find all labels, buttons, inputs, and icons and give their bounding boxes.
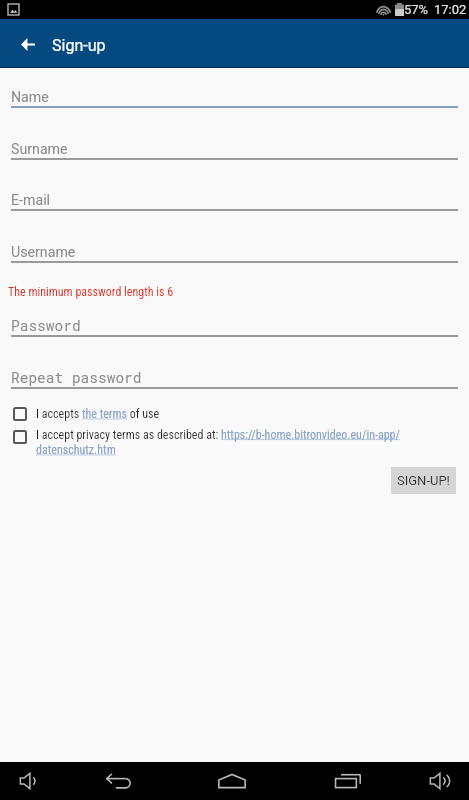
- staticText: Username: [11, 244, 76, 261]
- staticText: 17:02: [434, 2, 467, 17]
- button[interactable]: Volume up: [415, 762, 463, 800]
- button[interactable]: Home: [208, 762, 256, 800]
- staticText: I accepts the terms of use: [36, 407, 160, 421]
- button[interactable]: Back: [95, 762, 143, 800]
- button[interactable]: Recent apps: [324, 762, 372, 800]
- button[interactable]: Surname: [0, 132, 469, 160]
- staticText: The minimum password length is 6: [8, 285, 174, 299]
- staticText: Sign-up: [52, 36, 106, 55]
- staticText: Name: [11, 89, 49, 106]
- button[interactable]: Username: [0, 235, 469, 263]
- button[interactable]: I accept privacy terms as described at: …: [0, 428, 469, 457]
- button[interactable]: SIGN-UP!: [391, 467, 456, 494]
- button[interactable]: Back: [13, 23, 43, 63]
- staticText: Surname: [11, 141, 68, 158]
- staticText: 57%: [404, 2, 429, 17]
- staticText: SIGN-UP!: [397, 473, 450, 488]
- button[interactable]: Name: [0, 80, 469, 108]
- button[interactable]: Password: [0, 309, 469, 337]
- button[interactable]: Repeat password: [0, 361, 469, 389]
- staticText: I accept privacy terms as described at: …: [36, 428, 461, 457]
- staticText: E-mail: [11, 192, 51, 209]
- button[interactable]: E-mail: [0, 183, 469, 211]
- staticText: Repeat password: [11, 368, 142, 387]
- button[interactable]: I accepts the terms of use: [0, 407, 469, 421]
- staticText: Password: [11, 316, 81, 335]
- button[interactable]: Volume down: [5, 762, 53, 800]
